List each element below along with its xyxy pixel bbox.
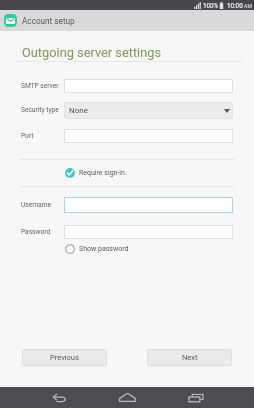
staticText: None [69,106,88,115]
button[interactable]: Show password [60,241,150,256]
staticText: Next [182,353,198,362]
staticText: SMTP server [21,82,59,90]
button[interactable] [64,225,233,239]
staticText: Password [21,228,51,236]
button[interactable]: Back [38,387,80,408]
staticText: Previous [50,353,79,362]
button[interactable]: Home [106,387,148,408]
button[interactable] [64,129,233,143]
staticText: Security type [21,106,59,114]
staticText: Show password [79,245,129,253]
staticText: Outgoing server settings [22,45,162,60]
button[interactable]: Next [147,349,232,366]
staticText: AM [244,3,252,9]
staticText: Account setup [22,16,75,26]
button[interactable]: Previous [22,349,107,366]
button[interactable] [64,79,233,93]
button[interactable]: Require sign-in. [60,160,160,186]
button[interactable] [64,197,233,213]
staticText: Require sign-in. [79,169,127,177]
staticText: 10:00 [227,2,243,9]
button[interactable]: None [64,102,233,119]
staticText: 100% [203,2,219,9]
staticText: Port [21,132,34,140]
staticText: Username [21,201,51,209]
button[interactable]: Recent apps [175,387,217,408]
